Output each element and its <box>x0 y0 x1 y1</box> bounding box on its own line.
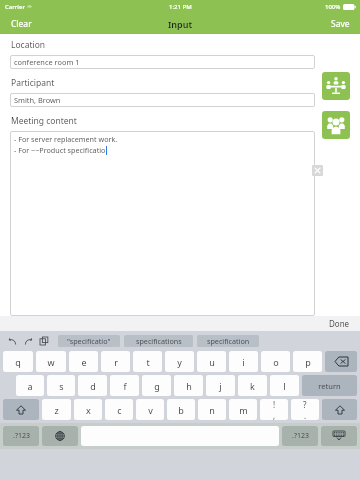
staticText: y <box>177 356 182 368</box>
button[interactable]: x <box>74 399 102 420</box>
button[interactable]: n <box>198 399 226 420</box>
button[interactable]: h <box>174 375 203 396</box>
staticText: h <box>186 380 192 392</box>
staticText: v <box>148 404 153 416</box>
staticText: w <box>47 356 55 368</box>
staticText: specification <box>207 336 250 346</box>
button[interactable]: z <box>42 399 71 420</box>
staticText: return <box>318 381 341 391</box>
button[interactable]: s <box>47 375 75 396</box>
button[interactable]: ? <box>291 399 319 420</box>
staticText: p <box>305 356 311 368</box>
button[interactable]: Hide keyboard <box>321 426 357 446</box>
staticText: s <box>59 380 64 392</box>
staticText: Save <box>331 18 350 30</box>
staticText: x <box>86 404 91 416</box>
button[interactable]: v <box>136 399 164 420</box>
button[interactable]: Shift <box>322 399 357 420</box>
staticText: Smith, Brown <box>14 95 61 105</box>
staticText: a <box>27 380 33 392</box>
staticText: Meeting content <box>11 115 77 127</box>
staticText: n <box>209 404 215 416</box>
button[interactable]: t <box>133 351 162 372</box>
button[interactable]: specification <box>197 335 259 347</box>
button[interactable]: ! <box>260 399 288 420</box>
staticText: r <box>114 356 118 368</box>
button[interactable]: Change keyboard language <box>42 426 78 446</box>
button[interactable]: Shift <box>3 399 39 420</box>
button[interactable]: d <box>78 375 107 396</box>
button[interactable]: conference room 1 <box>10 55 315 69</box>
button[interactable]: u <box>197 351 226 372</box>
button[interactable]: Clear meeting content <box>312 165 323 176</box>
staticText: d <box>90 380 96 392</box>
staticText: b <box>178 404 184 416</box>
button[interactable]: return <box>302 375 357 396</box>
staticText: specifications <box>136 336 182 346</box>
staticText: l <box>283 380 286 392</box>
staticText: Clear <box>11 18 32 30</box>
staticText: Carrier <box>5 3 25 11</box>
staticText: - For ~~Product specificatio <box>14 145 106 155</box>
button[interactable]: l <box>270 375 299 396</box>
button[interactable]: g <box>142 375 171 396</box>
button[interactable]: o <box>261 351 290 372</box>
button[interactable]: Select participants <box>322 111 350 139</box>
button[interactable]: Copy <box>36 332 52 350</box>
button[interactable]: "specificatio" <box>58 335 120 347</box>
staticText: Input <box>168 18 193 30</box>
staticText: Done <box>329 318 350 329</box>
button[interactable]: y <box>165 351 194 372</box>
staticText: 1:21 PM <box>169 3 192 11</box>
staticText: f <box>123 380 127 392</box>
staticText: ! <box>273 399 276 410</box>
staticText: m <box>239 404 248 416</box>
button[interactable]: f <box>110 375 139 396</box>
button[interactable]: Save <box>321 13 360 34</box>
button[interactable]: Backspace <box>325 351 357 372</box>
button[interactable]: r <box>101 351 130 372</box>
staticText: conference room 1 <box>14 57 80 67</box>
button[interactable]: Redo <box>20 332 36 350</box>
button[interactable]: Undo <box>4 332 20 350</box>
staticText: z <box>54 404 59 416</box>
staticText: . <box>304 410 307 420</box>
button[interactable]: c <box>105 399 133 420</box>
staticText: t <box>146 356 150 368</box>
staticText: q <box>15 356 21 368</box>
button[interactable]: i <box>229 351 258 372</box>
staticText: , <box>273 410 276 420</box>
staticText: g <box>154 380 160 392</box>
button[interactable]: Smith, Brown <box>10 93 315 107</box>
staticText: Location <box>11 39 46 51</box>
staticText: Participant <box>11 77 55 89</box>
button[interactable]: k <box>238 375 267 396</box>
staticText: "specificatio" <box>67 336 111 346</box>
staticText: .?123 <box>292 431 309 441</box>
button[interactable]: w <box>36 351 66 372</box>
button[interactable]: Done <box>319 316 360 331</box>
button[interactable]: j <box>206 375 235 396</box>
button[interactable]: - For server replacement work. <box>10 131 315 316</box>
button[interactable]: .?123 <box>3 426 39 446</box>
button[interactable]: .?123 <box>282 426 318 446</box>
staticText: e <box>81 356 87 368</box>
button[interactable]: e <box>69 351 98 372</box>
staticText: j <box>219 380 222 392</box>
staticText: k <box>250 380 255 392</box>
staticText: ? <box>303 399 307 410</box>
button[interactable]: a <box>16 375 44 396</box>
button[interactable]: b <box>167 399 195 420</box>
button[interactable]: Clear <box>0 13 43 34</box>
button[interactable]: q <box>3 351 33 372</box>
staticText: o <box>273 356 279 368</box>
staticText: c <box>117 404 122 416</box>
button[interactable]: p <box>293 351 322 372</box>
button[interactable]: Select location <box>322 72 350 100</box>
staticText: - For server replacement work. <box>14 134 118 144</box>
staticText: i <box>242 356 245 368</box>
button[interactable]: specifications <box>124 335 193 347</box>
staticText: 100% <box>325 3 341 11</box>
button[interactable]: m <box>229 399 257 420</box>
